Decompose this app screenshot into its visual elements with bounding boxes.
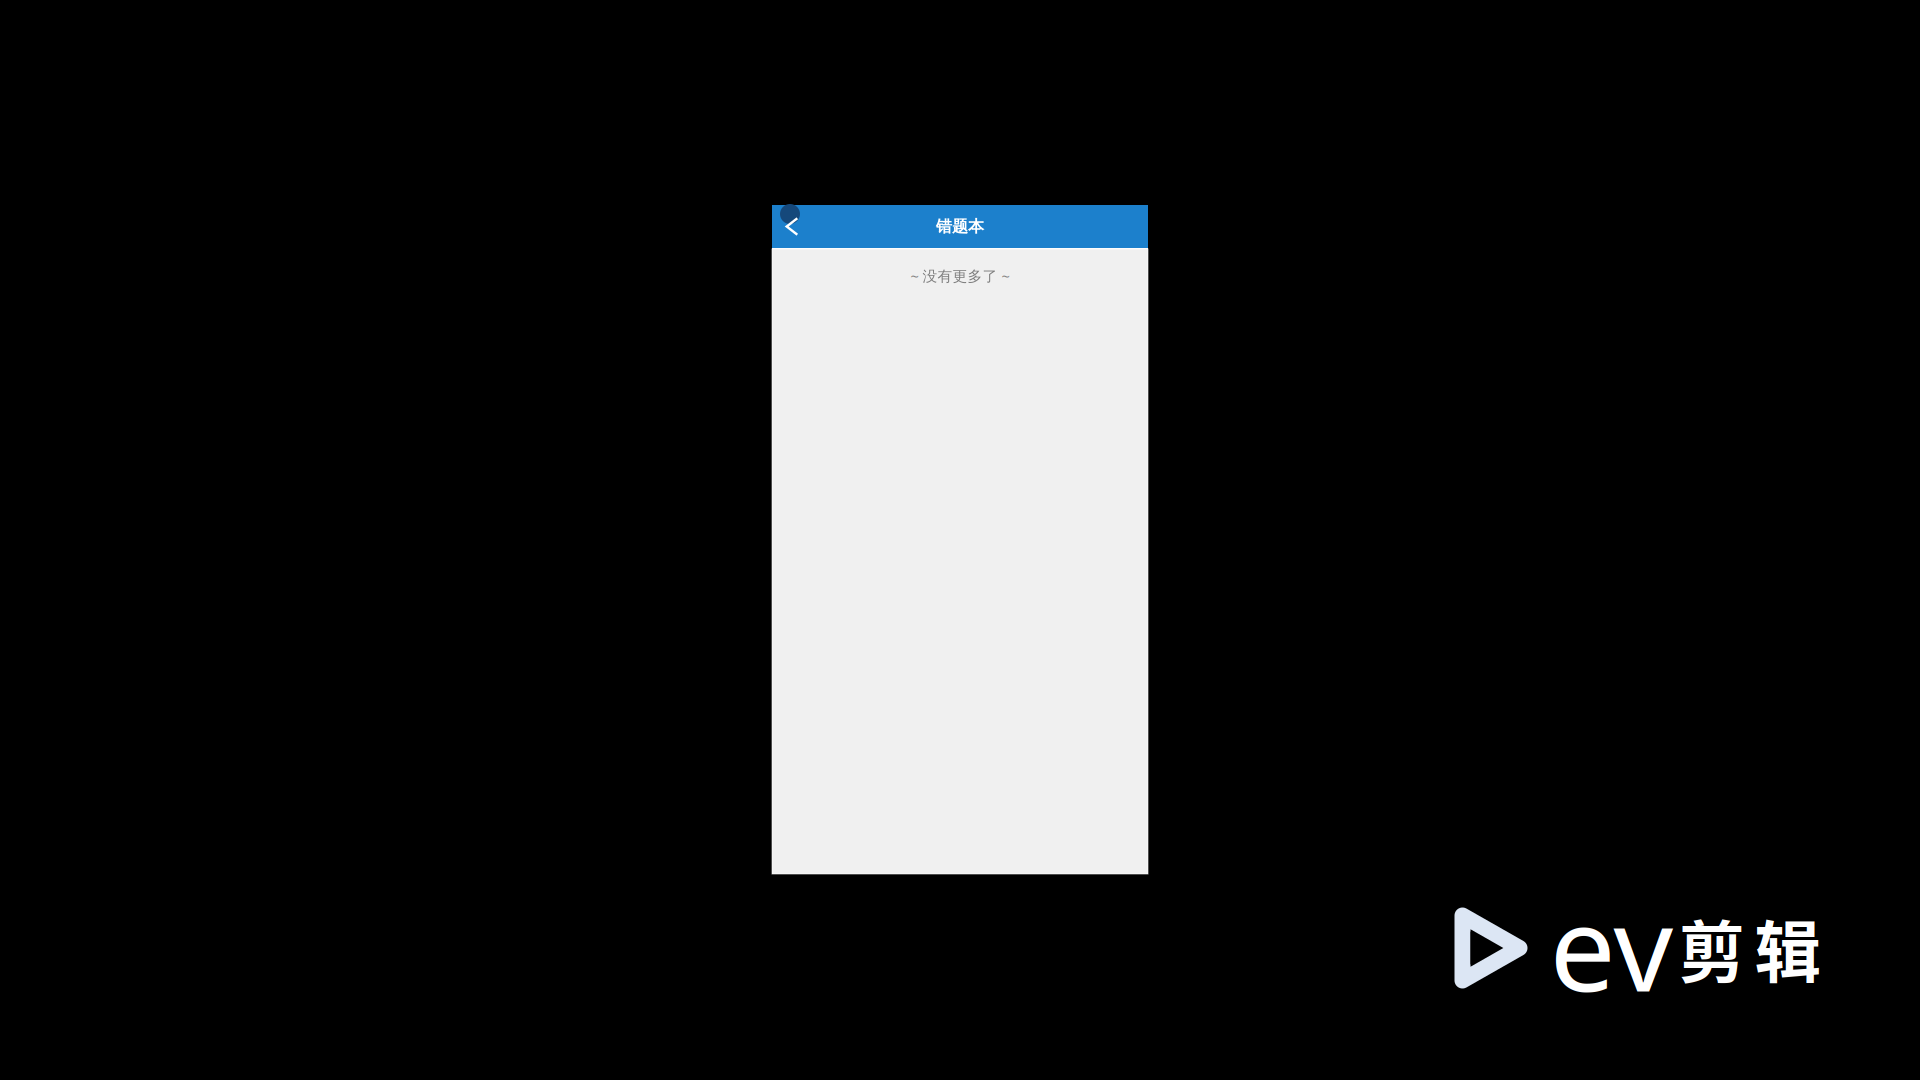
staticText: 错题本 [936, 217, 984, 236]
staticText: 剪 [1678, 900, 1745, 996]
staticText: ~ 没有更多了 ~ [910, 266, 1009, 285]
button[interactable]: Back [772, 205, 812, 248]
staticText: ev [1549, 868, 1673, 1024]
staticText: 辑 [1754, 900, 1821, 996]
